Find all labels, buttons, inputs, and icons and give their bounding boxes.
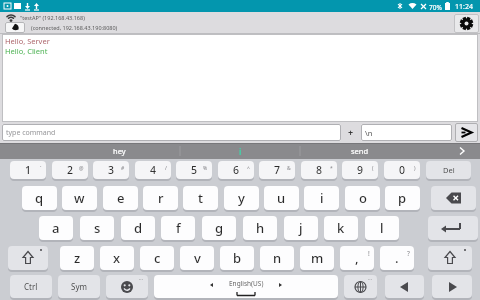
- button[interactable]: 6: [218, 161, 254, 179]
- button[interactable]: y: [224, 186, 259, 210]
- button[interactable]: ···: [106, 275, 148, 298]
- button[interactable]: 8: [301, 161, 337, 179]
- button[interactable]: e: [103, 186, 138, 210]
- staticText: 70%: [429, 3, 442, 12]
- staticText: n: [273, 249, 282, 267]
- staticText: q: [35, 189, 44, 207]
- button[interactable]: g: [202, 216, 236, 240]
- button[interactable]: ,: [340, 246, 374, 270]
- button[interactable]: 9: [342, 161, 378, 179]
- button[interactable]: q: [22, 186, 57, 210]
- button[interactable]: u: [264, 186, 299, 210]
- button[interactable]: 1: [10, 161, 46, 179]
- staticText: 9: [357, 163, 364, 177]
- button[interactable]: d: [121, 216, 155, 240]
- button[interactable]: English(US): [154, 275, 338, 298]
- button[interactable]: i: [180, 143, 300, 159]
- staticText: ): [414, 165, 416, 172]
- staticText: .: [395, 249, 399, 267]
- button[interactable]: [455, 123, 478, 142]
- staticText: (: [372, 165, 374, 172]
- staticText: send: [351, 146, 369, 156]
- button[interactable]: Del: [426, 161, 471, 179]
- staticText: r: [158, 189, 164, 207]
- button[interactable]: 0: [384, 161, 420, 179]
- staticText: p: [398, 189, 407, 207]
- button[interactable]: 2: [52, 161, 88, 179]
- button[interactable]: b: [220, 246, 254, 270]
- staticText: \n: [365, 128, 373, 138]
- button[interactable]: k: [324, 216, 358, 240]
- staticText: &: [287, 165, 291, 172]
- button[interactable]: c: [140, 246, 174, 270]
- button[interactable]: type command: [2, 124, 341, 141]
- button[interactable]: f: [161, 216, 195, 240]
- button[interactable]: j: [284, 216, 318, 240]
- button[interactable]: Ctrl: [10, 275, 52, 298]
- button[interactable]: 4: [135, 161, 171, 179]
- staticText: Sym: [71, 281, 87, 292]
- button[interactable]: o: [345, 186, 380, 210]
- staticText: t: [198, 189, 203, 207]
- staticText: #: [121, 165, 125, 172]
- staticText: 1: [25, 163, 32, 177]
- button[interactable]: [428, 216, 478, 240]
- button[interactable]: l: [365, 216, 399, 240]
- staticText: l: [380, 219, 384, 237]
- button[interactable]: ···: [344, 275, 377, 298]
- staticText: ···: [368, 276, 373, 283]
- button[interactable]: [431, 186, 476, 210]
- button[interactable]: hey: [58, 143, 180, 159]
- staticText: j: [299, 219, 303, 237]
- staticText: 5: [191, 163, 198, 177]
- button[interactable]: 3: [93, 161, 129, 179]
- staticText: `: [40, 165, 42, 172]
- button[interactable]: Sym: [58, 275, 100, 298]
- button[interactable]: [5, 22, 25, 33]
- staticText: b: [233, 249, 242, 267]
- button[interactable]: send: [300, 143, 420, 159]
- staticText: k: [337, 219, 345, 237]
- button[interactable]: \n: [361, 124, 452, 141]
- button[interactable]: m: [300, 246, 334, 270]
- button[interactable]: [428, 246, 472, 270]
- staticText: h: [256, 219, 265, 237]
- staticText: u: [277, 189, 286, 207]
- button[interactable]: n: [260, 246, 294, 270]
- button[interactable]: v: [180, 246, 214, 270]
- staticText: i: [320, 189, 324, 207]
- button[interactable]: t: [183, 186, 218, 210]
- staticText: Hello, Server: [5, 36, 50, 46]
- button[interactable]: 5: [176, 161, 212, 179]
- staticText: "testAP" (192.168.43.168): [20, 14, 85, 21]
- button[interactable]: [432, 275, 472, 298]
- button[interactable]: z: [60, 246, 94, 270]
- button[interactable]: h: [243, 216, 277, 240]
- button[interactable]: .: [380, 246, 414, 270]
- staticText: x: [113, 249, 121, 267]
- button[interactable]: x: [100, 246, 134, 270]
- button[interactable]: p: [385, 186, 420, 210]
- button[interactable]: a: [39, 216, 73, 240]
- staticText: a: [52, 219, 60, 237]
- staticText: ···: [139, 276, 144, 283]
- staticText: Del: [443, 165, 455, 175]
- button[interactable]: [454, 14, 479, 33]
- button[interactable]: [8, 246, 48, 270]
- button[interactable]: i: [304, 186, 339, 210]
- staticText: c: [154, 249, 161, 267]
- button[interactable]: r: [143, 186, 178, 210]
- button[interactable]: w: [62, 186, 97, 210]
- button[interactable]: s: [80, 216, 114, 240]
- staticText: hey: [113, 146, 126, 156]
- staticText: ,: [355, 249, 359, 267]
- staticText: +: [348, 126, 354, 138]
- button[interactable]: 7: [259, 161, 295, 179]
- staticText: v: [194, 249, 201, 267]
- button[interactable]: [385, 275, 424, 298]
- staticText: e: [117, 189, 125, 207]
- staticText: i: [239, 146, 242, 157]
- staticText: ?: [407, 249, 410, 258]
- staticText: f: [176, 219, 181, 237]
- staticText: 3: [108, 163, 115, 177]
